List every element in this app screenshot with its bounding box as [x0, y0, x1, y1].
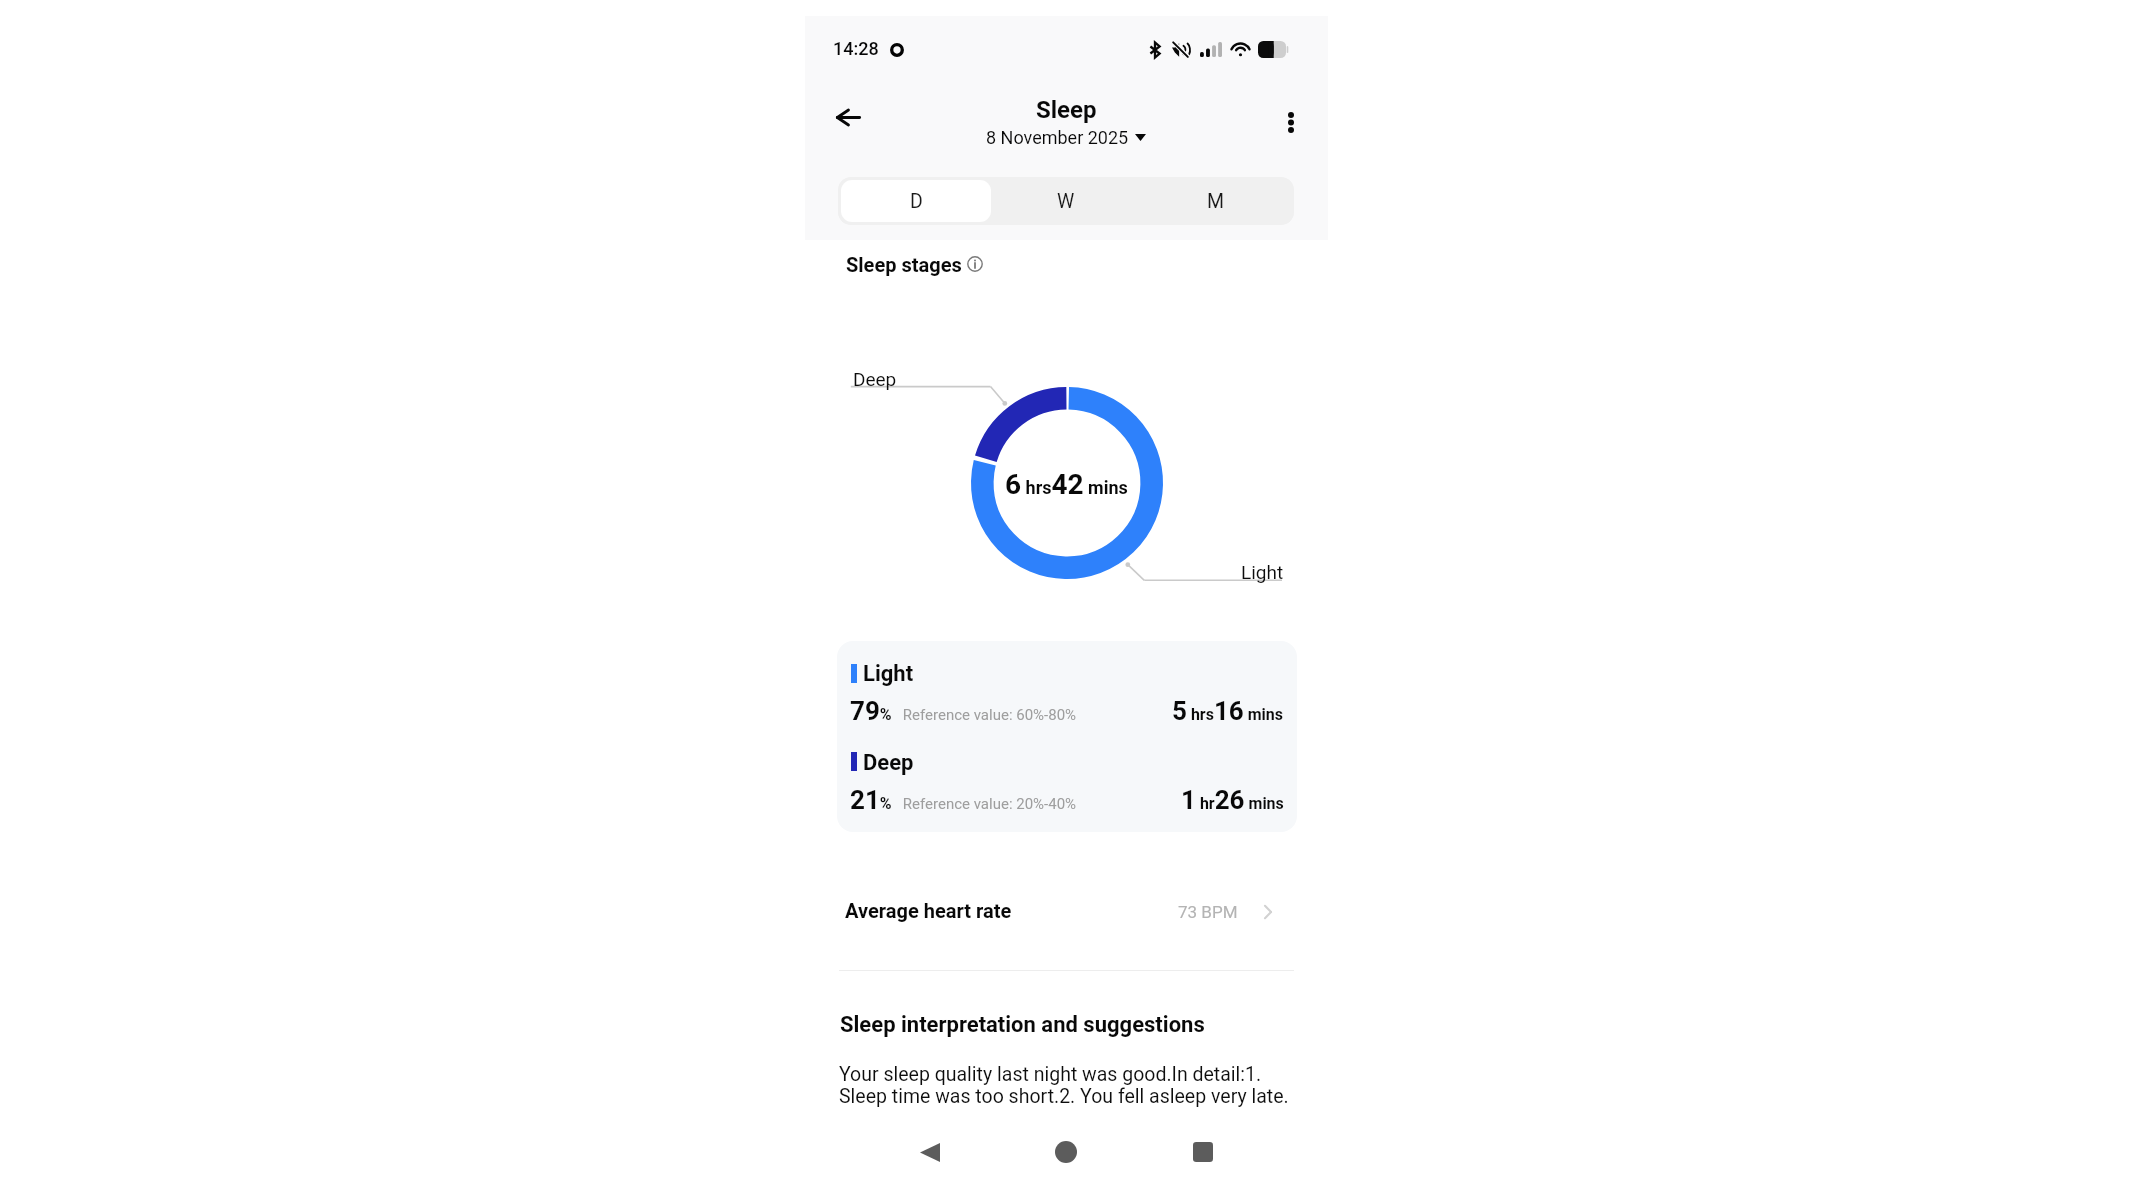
staticText: 8 November 2025: [986, 127, 1129, 148]
staticText: Sleep interpretation and suggestions: [840, 1012, 1205, 1038]
staticText: 1 hr26 mins: [1181, 785, 1284, 815]
staticText: Light: [863, 661, 914, 687]
staticText: 5 hrs16 mins: [1172, 696, 1284, 726]
staticText: W: [1057, 190, 1075, 213]
button[interactable]: More options: [1269, 100, 1313, 144]
staticText: Sleep: [1036, 96, 1097, 124]
button[interactable]: M: [1141, 180, 1291, 222]
staticText: 79% Reference value: 60%-80%: [850, 696, 1077, 726]
button[interactable]: D: [841, 180, 991, 222]
button[interactable]: Back: [908, 1130, 952, 1174]
staticText: D: [910, 190, 923, 213]
staticText: 73 BPM: [1178, 902, 1238, 922]
staticText: Sleep stages: [846, 253, 962, 276]
button[interactable]: Back: [825, 95, 871, 139]
staticText: Light: [1241, 561, 1284, 583]
button[interactable]: Average heart rate: [805, 885, 1328, 941]
staticText: Your sleep quality last night was good.I…: [839, 1063, 1301, 1108]
button[interactable]: W: [991, 180, 1141, 222]
button[interactable]: Home: [1044, 1130, 1088, 1174]
staticText: Average heart rate: [845, 899, 1012, 922]
button[interactable]: Recent apps: [1181, 1130, 1225, 1174]
staticText: 21% Reference value: 20%-40%: [850, 785, 1077, 815]
staticText: M: [1207, 190, 1225, 213]
staticText: Deep: [863, 750, 914, 776]
button[interactable]: Info about sleep stages: [964, 253, 986, 275]
staticText: 14:28: [833, 38, 879, 59]
button[interactable]: 8 November 2025: [982, 124, 1150, 151]
staticText: 6 hrs42 mins: [1005, 468, 1128, 501]
staticText: Deep: [853, 368, 897, 390]
